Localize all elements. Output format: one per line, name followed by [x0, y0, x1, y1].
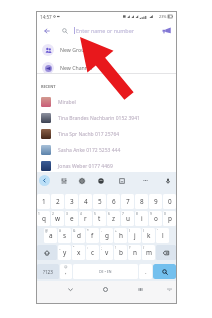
button[interactable]: q [37, 211, 50, 226]
staticText: ? [129, 246, 131, 250]
staticText: z [112, 214, 116, 223]
button[interactable]: j [128, 228, 141, 243]
button[interactable]: 0 [163, 194, 176, 209]
staticText: @ [45, 229, 48, 233]
staticText: d [77, 231, 81, 240]
button[interactable]: Tina Spr Nachb 017 25764 [36, 126, 177, 142]
staticText: f [91, 231, 94, 240]
staticText: 4 [84, 197, 88, 206]
staticText: y [63, 248, 67, 257]
button[interactable]: g [100, 228, 113, 243]
button[interactable]: s [58, 228, 71, 243]
button[interactable]: h [114, 228, 127, 243]
button[interactable]: Search [153, 264, 176, 279]
staticText: w [55, 214, 61, 223]
button[interactable]: b [114, 245, 127, 260]
button[interactable]: p [163, 211, 176, 226]
button[interactable]: Broadcast [160, 24, 173, 37]
button[interactable]: Home [98, 282, 112, 296]
button[interactable]: Voice input [162, 175, 173, 186]
button[interactable]: . [139, 264, 152, 279]
button[interactable]: DE • EN [73, 264, 138, 279]
button[interactable]: New Group [36, 41, 177, 58]
button[interactable]: l [156, 228, 169, 243]
button[interactable]: y [58, 245, 71, 260]
staticText: s [63, 231, 67, 240]
button[interactable]: New Channel [36, 59, 177, 76]
staticText: * [87, 229, 89, 233]
staticText: 7 [126, 197, 130, 206]
staticText: 3 [66, 212, 68, 216]
button[interactable]: o [149, 211, 162, 226]
button[interactable]: c [86, 245, 99, 260]
button[interactable]: m [142, 245, 155, 260]
button[interactable]: u [121, 211, 134, 226]
button[interactable]: 5 [93, 194, 106, 209]
button[interactable]: w [51, 211, 64, 226]
staticText: l [162, 231, 164, 240]
button[interactable]: Stickers [95, 175, 106, 186]
staticText: 6 [112, 197, 116, 206]
button[interactable]: Sasha Anke 0172 5253 444 [36, 142, 177, 158]
staticText: 2 [52, 212, 54, 216]
staticText: 14:57 [40, 14, 52, 20]
button[interactable]: Voice settings [58, 175, 69, 186]
staticText: i [141, 214, 143, 223]
staticText: 5 [98, 197, 102, 206]
button[interactable]: i [135, 211, 148, 226]
button[interactable]: Back [63, 282, 77, 296]
button[interactable]: Back [40, 24, 53, 37]
button[interactable]: Jonas Weber 0177 4469 [36, 158, 177, 174]
button[interactable]: x [72, 245, 85, 260]
button[interactable]: 6 [107, 194, 120, 209]
button[interactable]: a [44, 228, 57, 243]
button[interactable]: More options [140, 175, 151, 186]
button[interactable]: 7 [121, 194, 134, 209]
staticText: DE • EN [99, 269, 112, 274]
button[interactable]: , [60, 264, 72, 279]
button[interactable]: z [107, 211, 120, 226]
button[interactable]: Settings [76, 175, 87, 186]
button[interactable]: Recent apps [133, 282, 147, 296]
staticText: ; [101, 246, 102, 250]
button[interactable]: f [86, 228, 99, 243]
button[interactable] [156, 245, 176, 260]
staticText: ( [129, 229, 130, 233]
staticText: h [119, 231, 123, 240]
button[interactable]: ?123 [37, 264, 59, 279]
staticText: + [115, 229, 117, 233]
button[interactable]: e [65, 211, 78, 226]
button[interactable]: Hide keyboard [162, 282, 176, 296]
staticText: New Group [60, 46, 88, 53]
staticText: Tina Spr Nachb 017 25764 [58, 131, 120, 138]
staticText: / [143, 246, 145, 250]
staticText: : [87, 246, 88, 250]
button[interactable]: 9 [149, 194, 162, 209]
staticText: x [77, 248, 81, 257]
button[interactable]: k [142, 228, 155, 243]
button[interactable]: Clipboard [116, 175, 127, 186]
button[interactable]: v [100, 245, 113, 260]
button[interactable]: 4 [79, 194, 92, 209]
button[interactable]: Mirabel [36, 94, 177, 110]
staticText: ☺ [64, 265, 68, 269]
staticText: b [119, 248, 123, 257]
button[interactable]: Show more tools [39, 175, 50, 186]
button[interactable]: 1 [37, 194, 50, 209]
staticText: 4 [80, 212, 82, 216]
staticText: ?123 [43, 269, 53, 275]
button[interactable]: d [72, 228, 85, 243]
button[interactable]: Search [59, 25, 70, 36]
button[interactable]: 3 [65, 194, 78, 209]
button[interactable]: 8 [135, 194, 148, 209]
button[interactable]: r [79, 211, 92, 226]
staticText: p [168, 214, 172, 223]
staticText: 8 [136, 212, 138, 216]
button[interactable]: 2 [51, 194, 64, 209]
staticText: 2 [56, 197, 60, 206]
staticText: 5 [94, 212, 96, 216]
button[interactable]: Tina Brandes Nachbarin 0152 3941 [36, 110, 177, 126]
button[interactable]: t [93, 211, 106, 226]
button[interactable] [37, 245, 57, 260]
button[interactable]: n [128, 245, 141, 260]
